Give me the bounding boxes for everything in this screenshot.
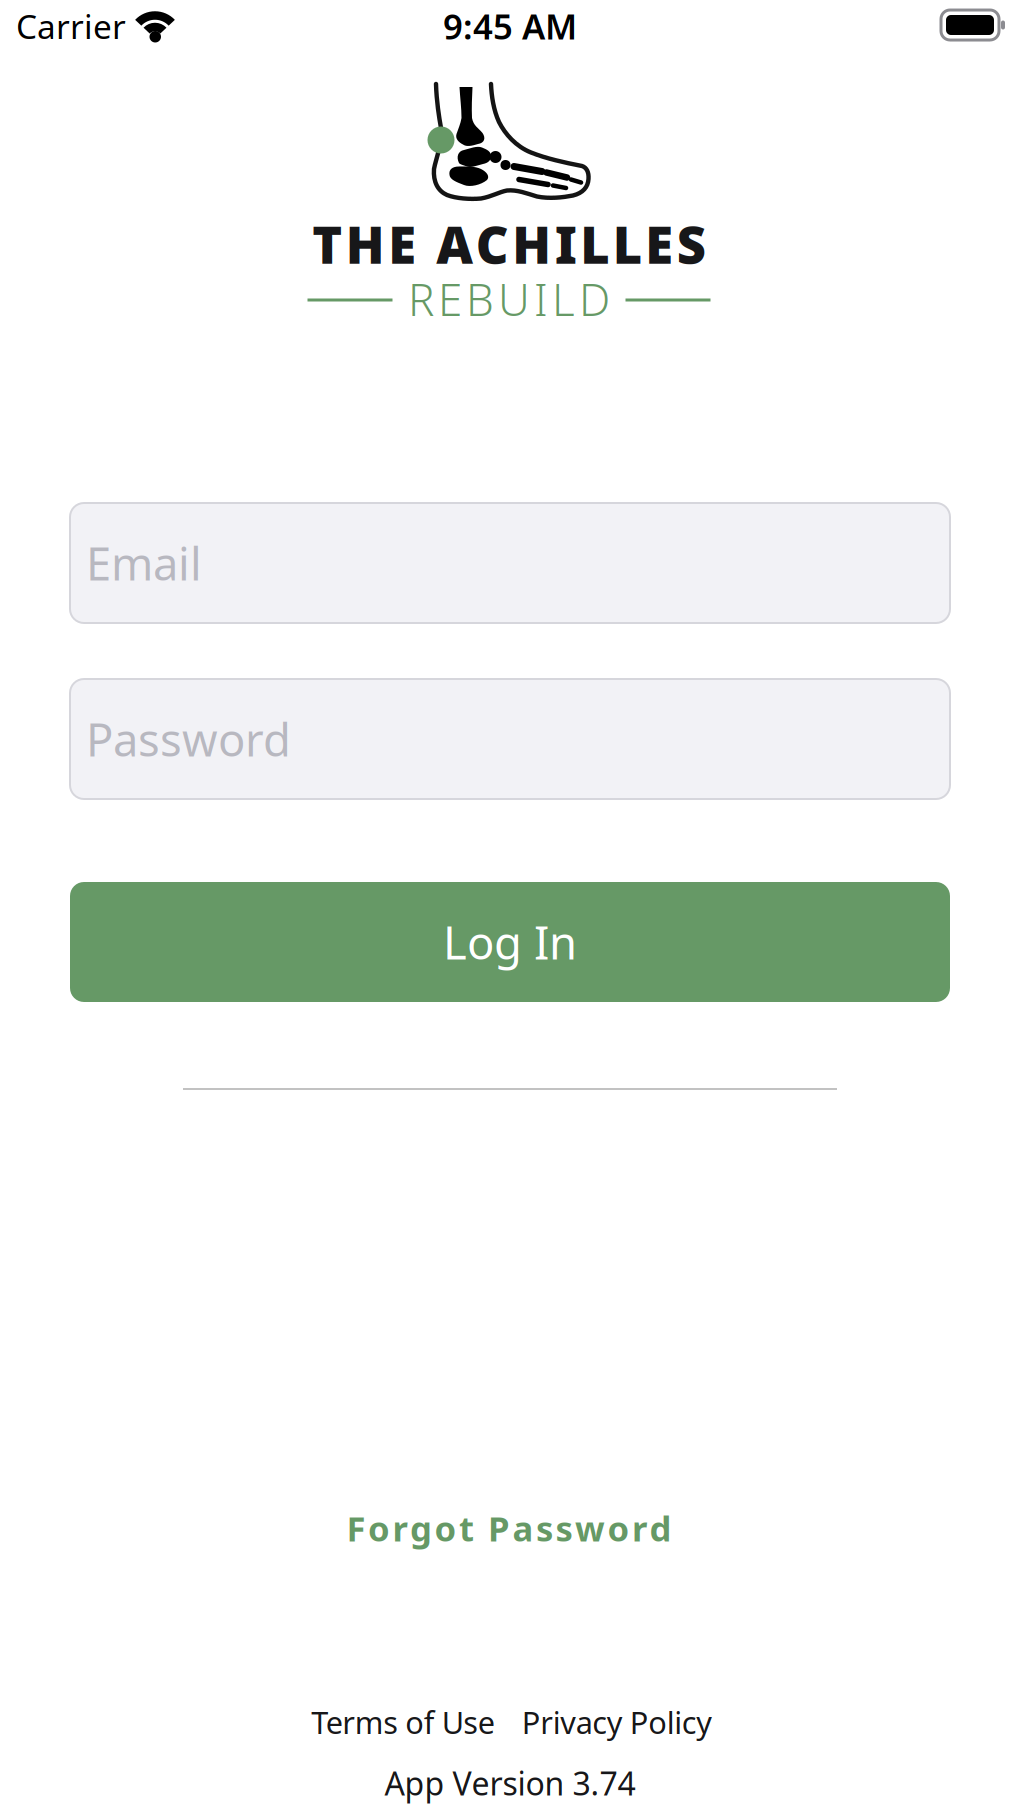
staticText: Carrier — [16, 4, 126, 48]
staticText: Forgot Password — [346, 1505, 671, 1551]
staticText: Privacy Policy — [522, 1702, 712, 1742]
button[interactable]: Privacy Policy — [518, 1698, 716, 1746]
staticText: Terms of Use — [311, 1702, 495, 1742]
button[interactable]: Log In — [70, 882, 950, 1002]
staticText: Password — [86, 709, 291, 769]
button[interactable]: Password — [70, 679, 950, 799]
staticText: 9:45 AM — [443, 3, 577, 49]
staticText: THE ACHILLES — [312, 210, 706, 278]
button[interactable]: Terms of Use — [307, 1698, 499, 1746]
staticText: Log In — [443, 912, 577, 972]
staticText: REBUILD — [408, 270, 610, 328]
button[interactable]: Email — [70, 503, 950, 623]
button[interactable]: Forgot Password — [336, 1499, 681, 1557]
staticText: App Version 3.74 — [384, 1762, 635, 1804]
staticText: Email — [86, 533, 202, 593]
